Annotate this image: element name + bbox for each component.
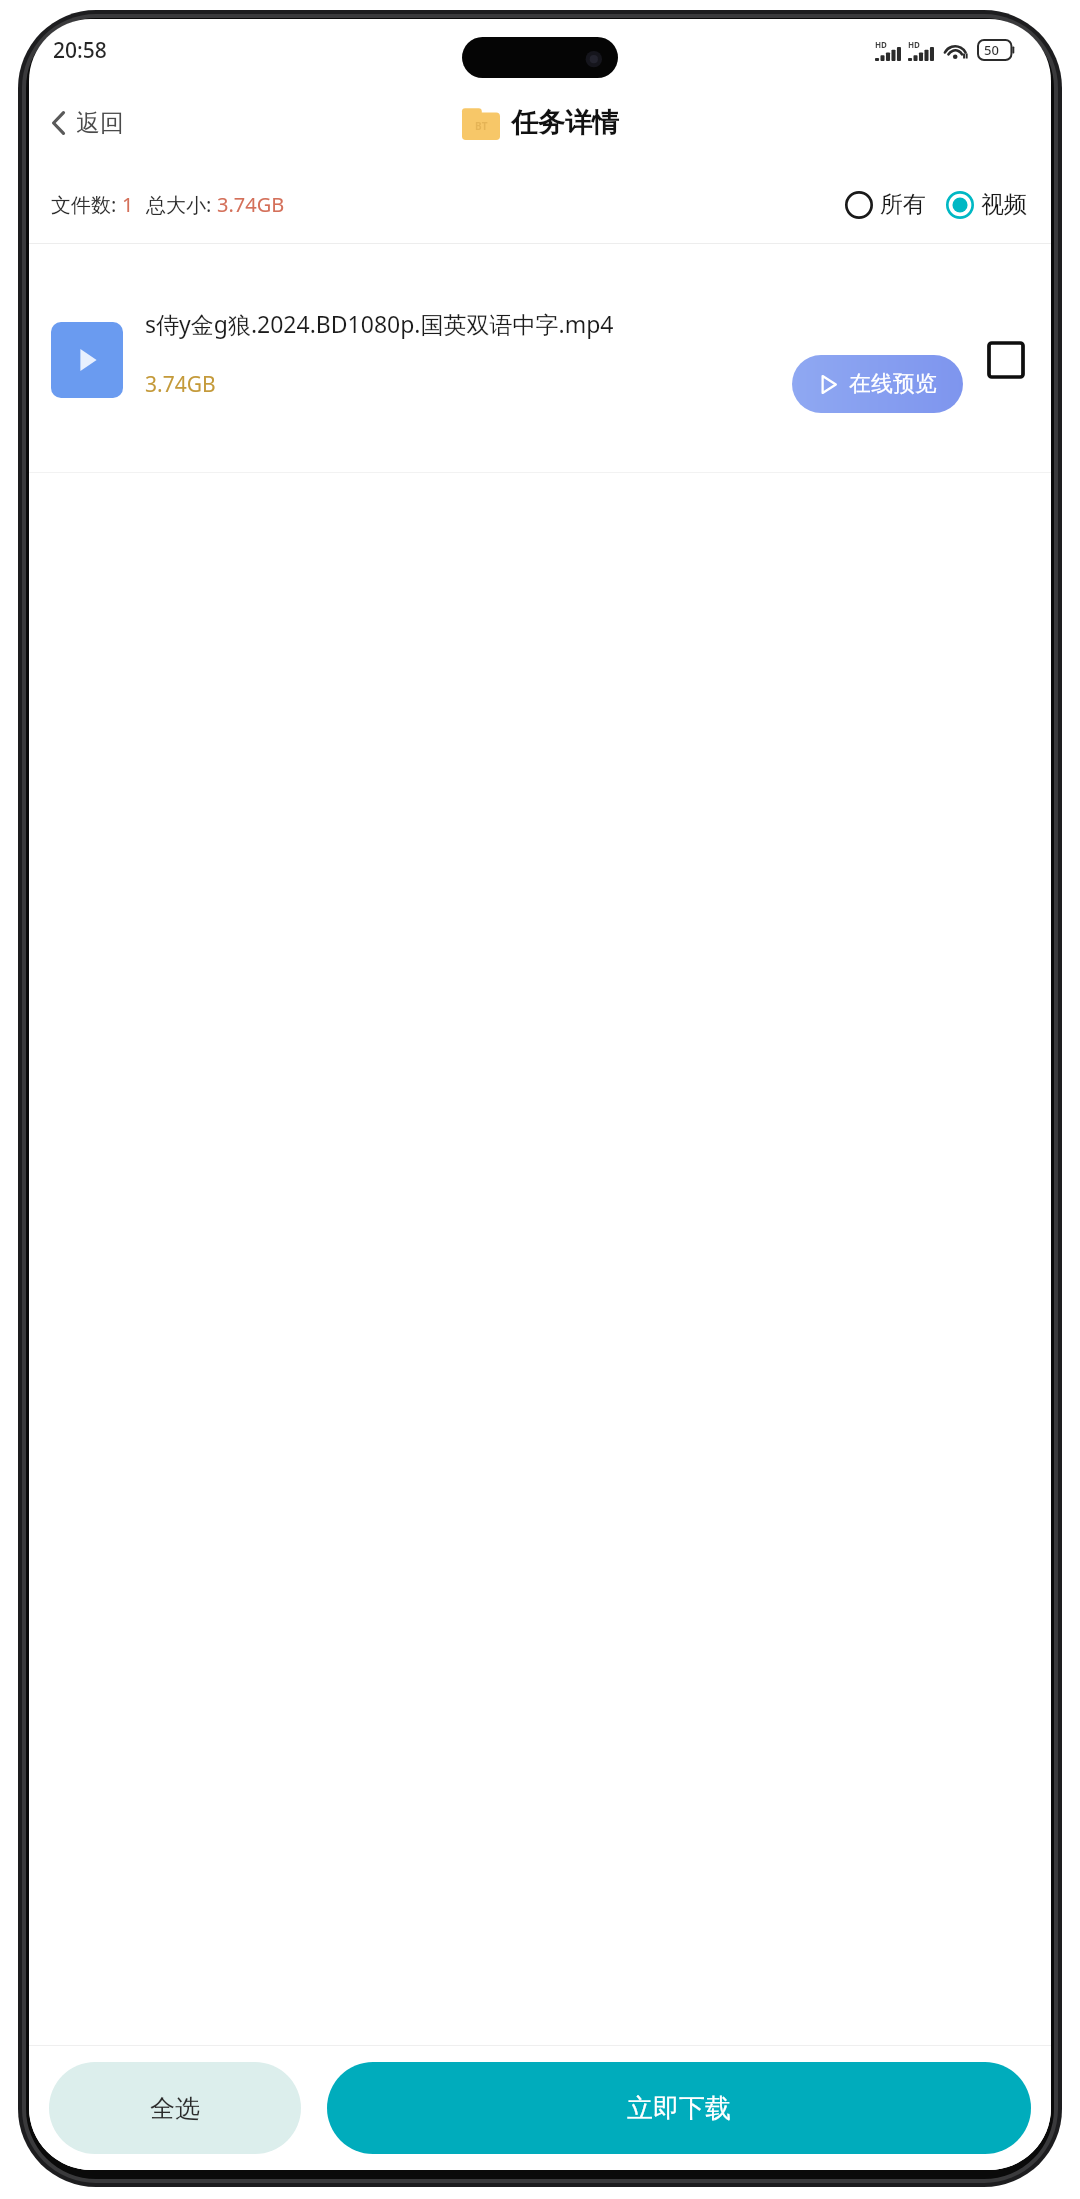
staticText: 3.74GB bbox=[217, 191, 285, 218]
staticText: 在线预览 bbox=[849, 370, 937, 398]
staticText: 立即下载 bbox=[627, 2092, 731, 2125]
staticText: 返回 bbox=[76, 108, 124, 138]
staticText: BT bbox=[475, 119, 488, 133]
staticText: 全选 bbox=[150, 2093, 200, 2124]
button[interactable]: 所有 bbox=[843, 184, 928, 225]
button[interactable]: 在线预览 bbox=[792, 355, 963, 413]
button[interactable]: s侍y金g狼.2024.BD1080p.国英双语中字.mp4 bbox=[29, 248, 1051, 472]
staticText: 任务详情 bbox=[511, 106, 619, 140]
staticText: 50 bbox=[984, 41, 999, 59]
staticText: 总大小: bbox=[146, 191, 217, 218]
staticText: 20:58 bbox=[53, 36, 107, 65]
button[interactable]: 返回 bbox=[29, 100, 140, 146]
staticText: 3.74GB bbox=[145, 370, 216, 399]
staticText: 1 bbox=[122, 191, 134, 218]
staticText: 文件数: bbox=[51, 191, 122, 218]
button[interactable]: 立即下载 bbox=[327, 2062, 1031, 2154]
button[interactable]: 全选 bbox=[49, 2062, 301, 2154]
staticText: HD bbox=[875, 39, 887, 50]
staticText: s侍y金g狼.2024.BD1080p.国英双语中字.mp4 bbox=[145, 308, 614, 339]
button[interactable]: 选择文件 bbox=[983, 337, 1029, 383]
button[interactable]: 视频 bbox=[944, 184, 1029, 225]
staticText: 所有 bbox=[880, 190, 926, 219]
staticText: 视频 bbox=[981, 190, 1027, 219]
staticText: HD bbox=[908, 39, 920, 50]
